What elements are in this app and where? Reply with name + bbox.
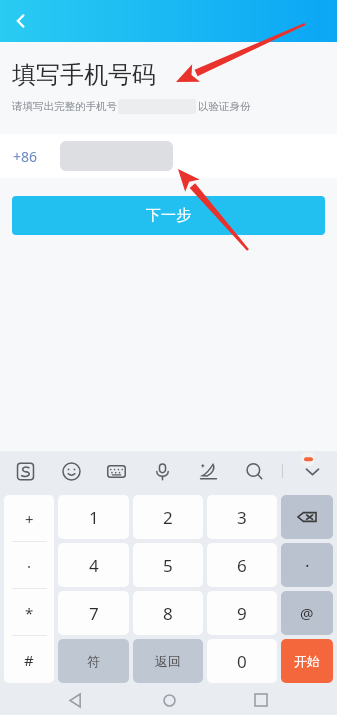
button[interactable]: Handwriting	[191, 454, 225, 488]
staticText: +86	[13, 147, 38, 166]
staticText: @	[300, 603, 314, 623]
staticText: 符	[87, 653, 100, 669]
button[interactable]: ·	[4, 542, 54, 589]
staticText: 填写手机号码	[12, 60, 156, 90]
button[interactable]: Back	[59, 685, 93, 715]
button[interactable]: Home	[152, 685, 186, 715]
button[interactable]: Hide keyboard	[295, 454, 329, 488]
button[interactable]: Keyboard	[99, 454, 133, 488]
button[interactable]: Recents	[244, 685, 278, 715]
button[interactable]: 返回	[133, 639, 203, 683]
button[interactable]: 8	[133, 591, 203, 635]
staticText: +	[25, 509, 34, 529]
button[interactable]: Sogou input	[8, 454, 42, 488]
staticText: 返回	[155, 653, 181, 669]
staticText: 以验证身份	[198, 100, 251, 113]
staticText: 6	[237, 554, 247, 577]
button[interactable]: Emoji	[54, 454, 88, 488]
button[interactable]: Backspace	[281, 495, 333, 539]
button[interactable]: 符	[58, 639, 129, 683]
staticText: 5	[163, 554, 173, 577]
staticText: 开始	[294, 653, 320, 669]
staticText: 1	[89, 506, 99, 529]
button[interactable]: Search	[237, 454, 271, 488]
staticText: 3	[237, 506, 247, 529]
staticText: 请填写出完整的手机号	[12, 100, 117, 113]
button[interactable]: 3	[207, 495, 277, 539]
button[interactable]: Back	[0, 0, 42, 42]
button[interactable]: 开始	[281, 639, 333, 683]
staticText: 9	[237, 602, 247, 625]
button[interactable]: 6	[207, 543, 277, 587]
button[interactable]: Voice input	[145, 454, 179, 488]
button[interactable]: ·	[281, 543, 333, 587]
button[interactable]: 0	[207, 639, 277, 683]
staticText: *	[25, 603, 34, 623]
staticText: ·	[305, 554, 310, 577]
button[interactable]: 1	[58, 495, 129, 539]
staticText: #	[24, 650, 34, 670]
button[interactable]: Sogou badge	[301, 452, 315, 466]
staticText: 7	[89, 602, 99, 625]
button[interactable]: 下一步	[12, 196, 325, 235]
button[interactable]: 5	[133, 543, 203, 587]
button[interactable]: #	[4, 636, 54, 683]
button[interactable]: 9	[207, 591, 277, 635]
staticText: 4	[89, 554, 99, 577]
staticText: ·	[27, 556, 32, 576]
staticText: 0	[237, 650, 247, 673]
button[interactable]: 2	[133, 495, 203, 539]
staticText: 2	[163, 506, 173, 529]
button[interactable]: *	[4, 589, 54, 636]
button[interactable]: @	[281, 591, 333, 635]
staticText: 下一步	[146, 206, 191, 225]
button[interactable]: +	[4, 495, 54, 542]
button[interactable]: +86	[0, 134, 337, 178]
button[interactable]: 4	[58, 543, 129, 587]
staticText: 8	[163, 602, 173, 625]
button[interactable]: 7	[58, 591, 129, 635]
